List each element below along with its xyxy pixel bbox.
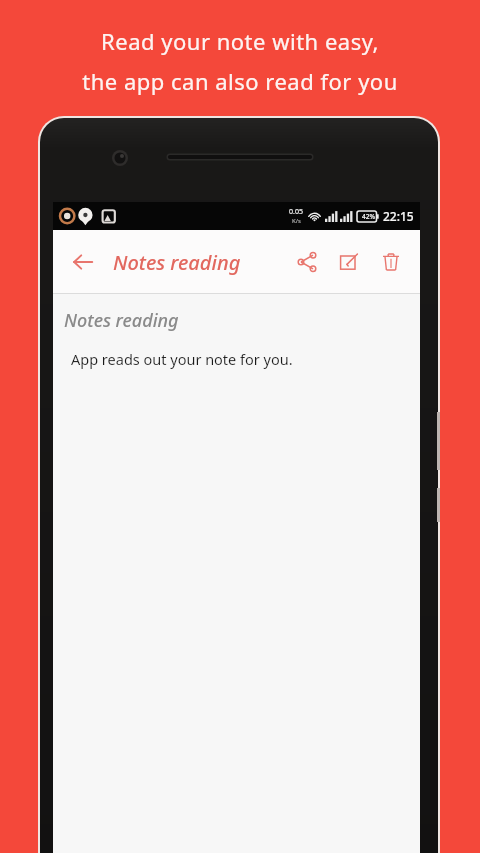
staticText: App reads out your note for you. <box>71 349 293 369</box>
staticText: Notes reading <box>113 249 241 276</box>
button[interactable]: Back <box>61 240 105 284</box>
staticText: the app can also read for you <box>82 66 398 96</box>
staticText: K/s <box>292 217 301 225</box>
staticText: Read your note with easy, <box>101 26 379 56</box>
staticText: 0.05 <box>289 207 303 217</box>
button[interactable]: Share <box>286 241 328 283</box>
staticText: 22:15 <box>383 208 414 224</box>
button[interactable]: Edit <box>328 241 370 283</box>
staticText: 42% <box>362 212 375 221</box>
staticText: Notes reading <box>64 308 179 333</box>
button[interactable]: Delete <box>370 241 412 283</box>
